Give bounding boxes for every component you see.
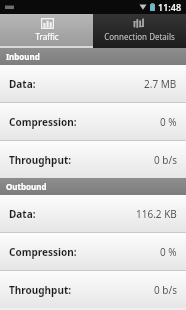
button[interactable]: Compression: xyxy=(0,233,186,270)
staticText: Data: xyxy=(9,207,36,221)
staticText: 11:48 xyxy=(158,1,182,13)
staticText: Inbound xyxy=(6,51,40,62)
button[interactable]: Data: xyxy=(0,65,186,102)
other: Connection Details xyxy=(133,18,146,29)
button[interactable]: Connection Details xyxy=(93,14,186,48)
staticText: Compression: xyxy=(9,115,77,129)
button[interactable]: Compression: xyxy=(0,103,186,140)
staticText: Throughput: xyxy=(9,153,72,167)
staticText: Traffic xyxy=(35,31,59,42)
staticText: Data: xyxy=(9,77,36,91)
button[interactable]: Traffic xyxy=(0,14,93,48)
button[interactable]: Data: xyxy=(0,195,186,232)
button[interactable]: Throughput: xyxy=(0,141,186,178)
staticText: Compression: xyxy=(9,245,77,259)
staticText: Outbound xyxy=(6,181,47,192)
other: Traffic xyxy=(41,18,54,29)
staticText: Connection Details xyxy=(104,31,175,42)
button[interactable]: Throughput: xyxy=(0,271,186,308)
staticText: 0 b/s xyxy=(154,153,177,167)
staticText: 2.7 MB xyxy=(144,77,177,91)
staticText: Throughput: xyxy=(9,283,72,297)
staticText: 0 b/s xyxy=(154,283,177,297)
staticText: 116.2 KB xyxy=(136,207,177,221)
staticText: 0 % xyxy=(160,115,177,129)
staticText: 0 % xyxy=(160,245,177,259)
